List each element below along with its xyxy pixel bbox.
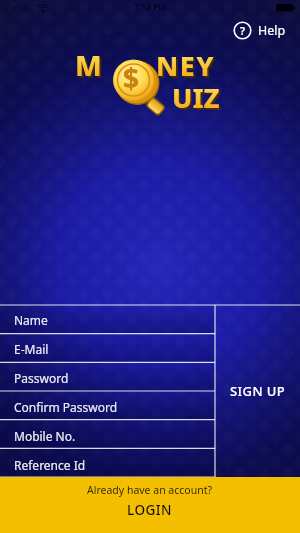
staticText: SIGN UP [230,382,285,400]
staticText: ? [240,23,246,38]
staticText: Password [14,370,69,386]
staticText: M [75,46,103,84]
staticText: NEY [156,47,216,84]
staticText: $ [123,59,140,97]
staticText: Carrier [5,2,32,13]
staticText: Confirm Password [14,399,118,415]
staticText: Name [14,312,48,328]
staticText: Mobile No. [14,428,76,444]
button[interactable]: Already have an account? [0,477,300,533]
button[interactable]: Confirm Password [0,392,215,421]
staticText: 7:12 PM [134,1,167,13]
button[interactable]: Password [0,363,215,392]
button[interactable]: Name [0,305,215,334]
staticText: UIZ [174,81,222,118]
button[interactable]: Mobile No. [0,421,215,450]
staticText: UIZ [172,79,220,116]
staticText: Help [258,22,286,39]
button[interactable]: SIGN UP [215,305,300,477]
staticText: Already have an account? [87,483,213,497]
staticText: Reference Id [14,457,86,473]
button[interactable]: Reference Id [0,450,215,479]
button[interactable]: E-Mail [0,334,215,363]
staticText: LOGIN [127,501,173,519]
button[interactable]: ? [229,17,290,44]
staticText: M [77,48,105,86]
staticText: NEY [158,49,218,86]
staticText: E-Mail [14,341,49,357]
